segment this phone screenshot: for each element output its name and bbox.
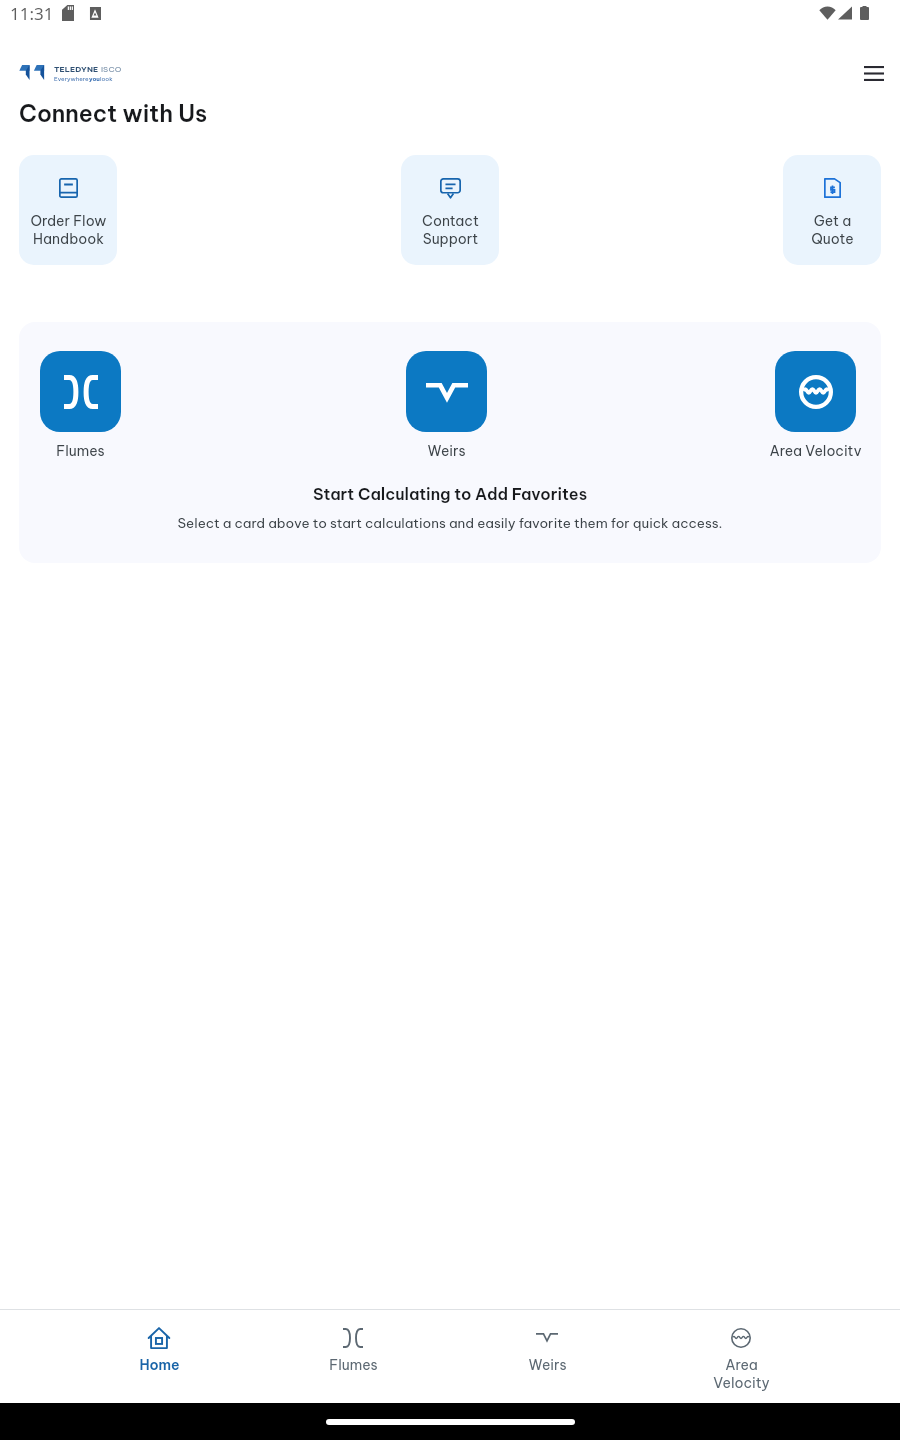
- staticText: Connect with Us: [19, 99, 208, 128]
- staticText: Order Flow Handbook: [30, 212, 107, 248]
- staticText: Get a Quote: [811, 212, 854, 248]
- button[interactable]: Flumes: [40, 351, 121, 432]
- button[interactable]: Flumes: [256, 1326, 450, 1374]
- button[interactable]: Order Flow Handbook: [19, 155, 117, 265]
- staticText: Select a card above to start calculation…: [19, 514, 881, 531]
- staticText: Weirs: [427, 442, 466, 456]
- staticText: ISCO: [99, 64, 122, 74]
- staticText: Home: [139, 1356, 180, 1374]
- button[interactable]: Open navigation menu: [859, 64, 889, 82]
- staticText: Everywhere: [54, 75, 89, 82]
- button[interactable]: Home: [62, 1326, 256, 1374]
- button[interactable]: Area Velocity: [644, 1326, 838, 1392]
- staticText: Flumes: [329, 1356, 378, 1374]
- button[interactable]: Weirs: [450, 1326, 644, 1374]
- staticText: 11:31: [10, 2, 54, 25]
- staticText: Start Calculating to Add Favorites: [19, 484, 881, 504]
- staticText: Flumes: [56, 442, 105, 456]
- staticText: Area Velocity: [713, 1356, 770, 1392]
- button[interactable]: Area Velocity: [775, 351, 856, 432]
- button[interactable]: Contact Support: [401, 155, 499, 265]
- staticText: look: [100, 75, 113, 82]
- staticText: Contact Support: [422, 212, 479, 248]
- button[interactable]: Weirs: [406, 351, 487, 432]
- button[interactable]: Get a Quote: [783, 155, 881, 265]
- staticText: you: [89, 75, 100, 82]
- staticText: TELEDYNE: [54, 64, 99, 74]
- staticText: Weirs: [528, 1356, 567, 1374]
- staticText: Area Velocity: [769, 442, 862, 456]
